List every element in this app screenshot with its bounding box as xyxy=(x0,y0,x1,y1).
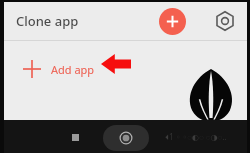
button[interactable]: Add clone xyxy=(159,8,186,35)
staticText: ⏴1 ◦ ◦◌◐◌ ◌◑◌.. xyxy=(165,131,243,142)
button[interactable]: Add app xyxy=(4,51,247,87)
button[interactable]: Home xyxy=(103,125,149,151)
staticText: Clone app xyxy=(16,12,79,30)
button[interactable]: Recents xyxy=(66,128,84,146)
button[interactable]: Settings xyxy=(212,8,238,34)
staticText: Add app xyxy=(51,62,95,77)
